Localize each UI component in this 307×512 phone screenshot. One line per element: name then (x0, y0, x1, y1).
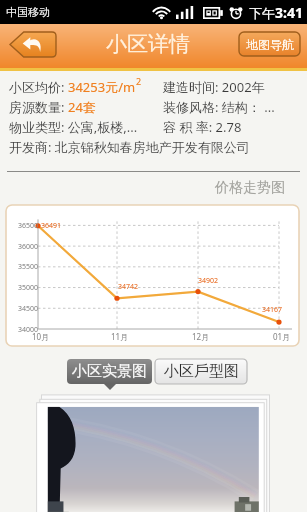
staticText: 34253元/m (68, 78, 136, 96)
staticText: 房源数量: (9, 98, 68, 116)
staticText: 34902 (198, 276, 219, 286)
staticText: 价格走势图 (215, 179, 285, 197)
staticText: 36000 (18, 242, 39, 252)
button[interactable]: 小区实景图 (67, 359, 152, 384)
staticText: 小区戶型图 (164, 362, 239, 381)
staticText: 3:41 (275, 3, 303, 22)
staticText: 中国移动 (6, 5, 50, 19)
staticText: 容 积 率: 2.78 (163, 118, 242, 136)
staticText: 下午 (249, 5, 275, 21)
staticText: 11月 (111, 331, 129, 342)
staticText: 35500 (18, 262, 39, 272)
staticText: 34742 (118, 282, 139, 292)
staticText: 2 (136, 75, 142, 87)
button[interactable] (155, 359, 247, 384)
staticText: 10月 (32, 331, 50, 342)
staticText: 34500 (18, 304, 39, 314)
staticText: 36491 (41, 221, 62, 231)
staticText: 12月 (192, 331, 210, 342)
staticText: 01月 (273, 331, 291, 342)
staticText: 小区实景图 (72, 362, 147, 381)
staticText: 物业类型: 公寓,板楼,... (9, 118, 138, 136)
staticText: 小区详情 (106, 31, 190, 57)
staticText: 建造时间: 2002年 (163, 78, 265, 96)
staticText: 35000 (18, 283, 39, 293)
staticText: 36500 (18, 221, 39, 231)
staticText: 装修风格: 结构： ... (163, 98, 275, 116)
staticText: 34000 (18, 325, 39, 335)
staticText: 34167 (262, 305, 283, 315)
staticText: 地图导航 (246, 37, 294, 52)
button[interactable]: Back (8, 31, 57, 58)
staticText: 小区均价: (9, 78, 68, 96)
staticText: 24套 (68, 98, 96, 116)
button[interactable]: 地图导航 (239, 32, 300, 56)
staticText: 开发商: 北京锦秋知春房地产开发有限公司 (9, 138, 250, 156)
